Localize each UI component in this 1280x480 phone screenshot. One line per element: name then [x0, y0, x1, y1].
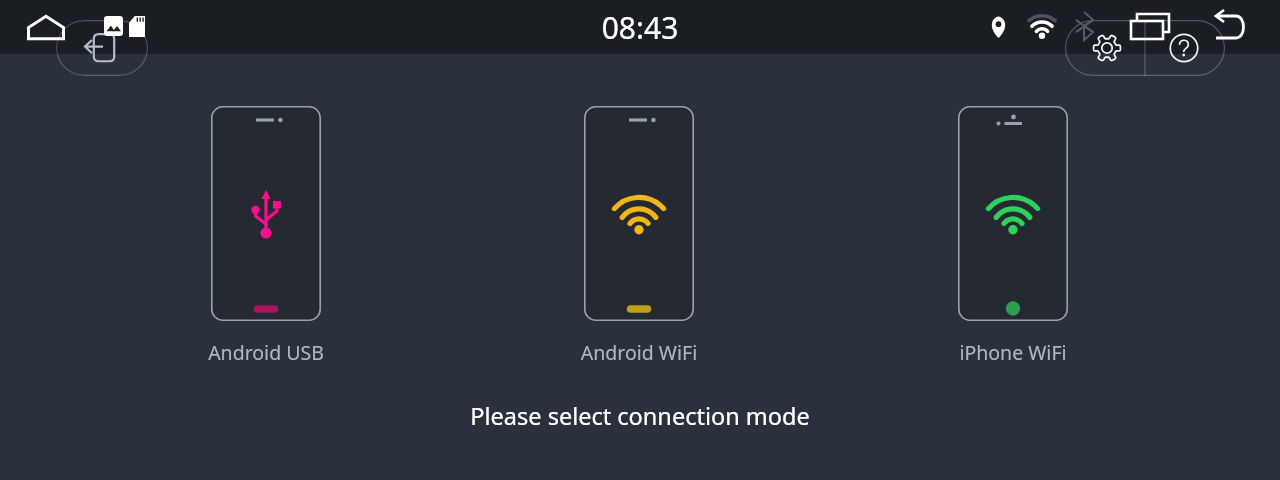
staticText: 08:43: [0, 7, 1280, 48]
button[interactable]: Settings: [1065, 20, 1145, 76]
staticText: Please select connection mode: [0, 400, 1280, 432]
button[interactable]: Home: [19, 7, 73, 47]
button[interactable]: iPhone WiFi: [918, 100, 1108, 370]
button[interactable]: Wi-Fi: [1024, 10, 1060, 44]
button[interactable]: Android USB: [171, 100, 361, 370]
staticText: Android WiFi: [544, 339, 734, 366]
button[interactable]: Recent apps: [1126, 5, 1176, 45]
button[interactable]: SD card: [125, 11, 149, 42]
staticText: iPhone WiFi: [918, 339, 1108, 366]
button[interactable]: Back: [1200, 5, 1250, 45]
button[interactable]: Bluetooth: [1069, 7, 1104, 45]
staticText: Android USB: [171, 339, 361, 366]
button[interactable]: Exit: [56, 20, 148, 76]
button[interactable]: Location: [983, 10, 1013, 44]
button[interactable]: Android WiFi: [544, 100, 734, 370]
button[interactable]: Gallery: [100, 11, 127, 41]
button[interactable]: Help: [1145, 20, 1225, 76]
